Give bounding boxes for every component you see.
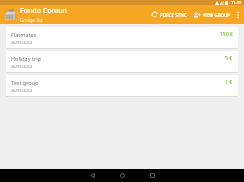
staticText: FORCE SYNC xyxy=(160,12,187,18)
staticText: Fondo Comun xyxy=(20,6,67,16)
staticText: Groups list xyxy=(20,17,43,23)
button[interactable]: Flatmates xyxy=(6,27,238,48)
other: App icon xyxy=(3,8,17,22)
staticText: 25/03/2014 xyxy=(11,88,33,93)
staticText: 11:19 xyxy=(231,0,242,5)
button[interactable]: NEW GROUP xyxy=(191,5,233,24)
button[interactable]: FORCE SYNC xyxy=(149,5,189,24)
staticText: 5 € xyxy=(225,55,233,62)
staticText: 150 € xyxy=(220,31,233,38)
button[interactable]: More options xyxy=(235,5,241,24)
staticText: 1 € xyxy=(225,79,233,86)
button[interactable]: Holiday trip xyxy=(6,51,238,72)
staticText: Holiday trip xyxy=(11,55,42,62)
staticText: 25/03/2014 xyxy=(11,40,33,45)
button[interactable]: Back xyxy=(81,169,103,182)
staticText: Flatmates xyxy=(11,31,37,38)
staticText: Test group xyxy=(11,79,39,86)
button[interactable]: Test group xyxy=(6,75,238,96)
staticText: 25/03/2014 xyxy=(11,64,33,69)
button[interactable]: Home xyxy=(111,169,133,182)
button[interactable]: Recent apps xyxy=(141,169,163,182)
staticText: NEW GROUP xyxy=(203,12,231,18)
